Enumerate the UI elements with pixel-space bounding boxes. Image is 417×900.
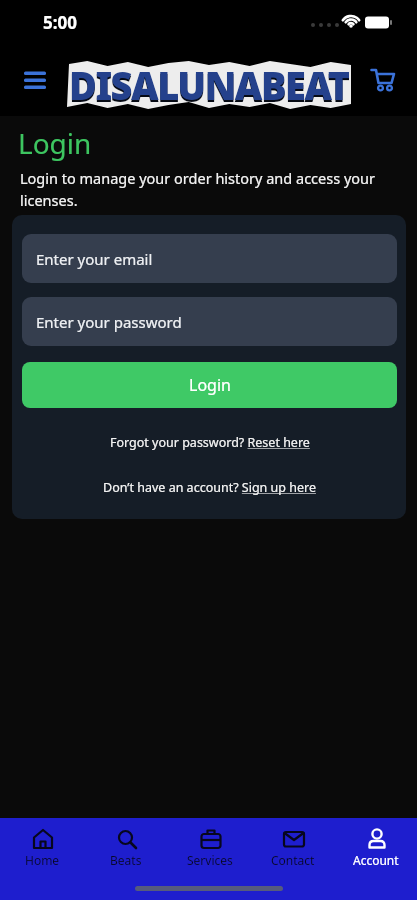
- staticText: Account: [353, 852, 399, 868]
- button[interactable]: Home: [0, 826, 84, 868]
- button[interactable]: Account: [334, 826, 417, 868]
- staticText: Forgot your password? Reset here: [110, 434, 310, 451]
- button[interactable]: DISALUNABEAT: [67, 60, 351, 110]
- button[interactable]: Enter your password: [22, 297, 397, 346]
- button[interactable]: Don’t have an account? Sign up here: [22, 479, 397, 496]
- staticText: Beats: [110, 852, 142, 868]
- staticText: Enter your email: [36, 249, 153, 269]
- staticText: Home: [25, 852, 60, 868]
- staticText: Login: [189, 374, 231, 396]
- button[interactable]: Forgot your password? Reset here: [22, 434, 397, 451]
- staticText: Services: [187, 852, 233, 868]
- button[interactable]: Login: [22, 362, 397, 408]
- staticText: Contact: [271, 852, 315, 868]
- button[interactable]: Beats: [84, 826, 168, 868]
- button[interactable]: Enter your email: [22, 234, 397, 283]
- staticText: Enter your password: [36, 312, 182, 332]
- button[interactable]: Contact: [251, 826, 334, 868]
- staticText: Login: [18, 124, 92, 162]
- staticText: DISALUNABEAT: [69, 61, 349, 111]
- button[interactable]: [18, 63, 52, 97]
- staticText: 5:00: [43, 11, 77, 34]
- staticText: DISALUNABEAT: [69, 59, 349, 109]
- button[interactable]: [365, 62, 401, 98]
- button[interactable]: Services: [168, 826, 251, 868]
- staticText: Don’t have an account? Sign up here: [103, 479, 316, 496]
- staticText: Login to manage your order history and a…: [20, 168, 376, 210]
